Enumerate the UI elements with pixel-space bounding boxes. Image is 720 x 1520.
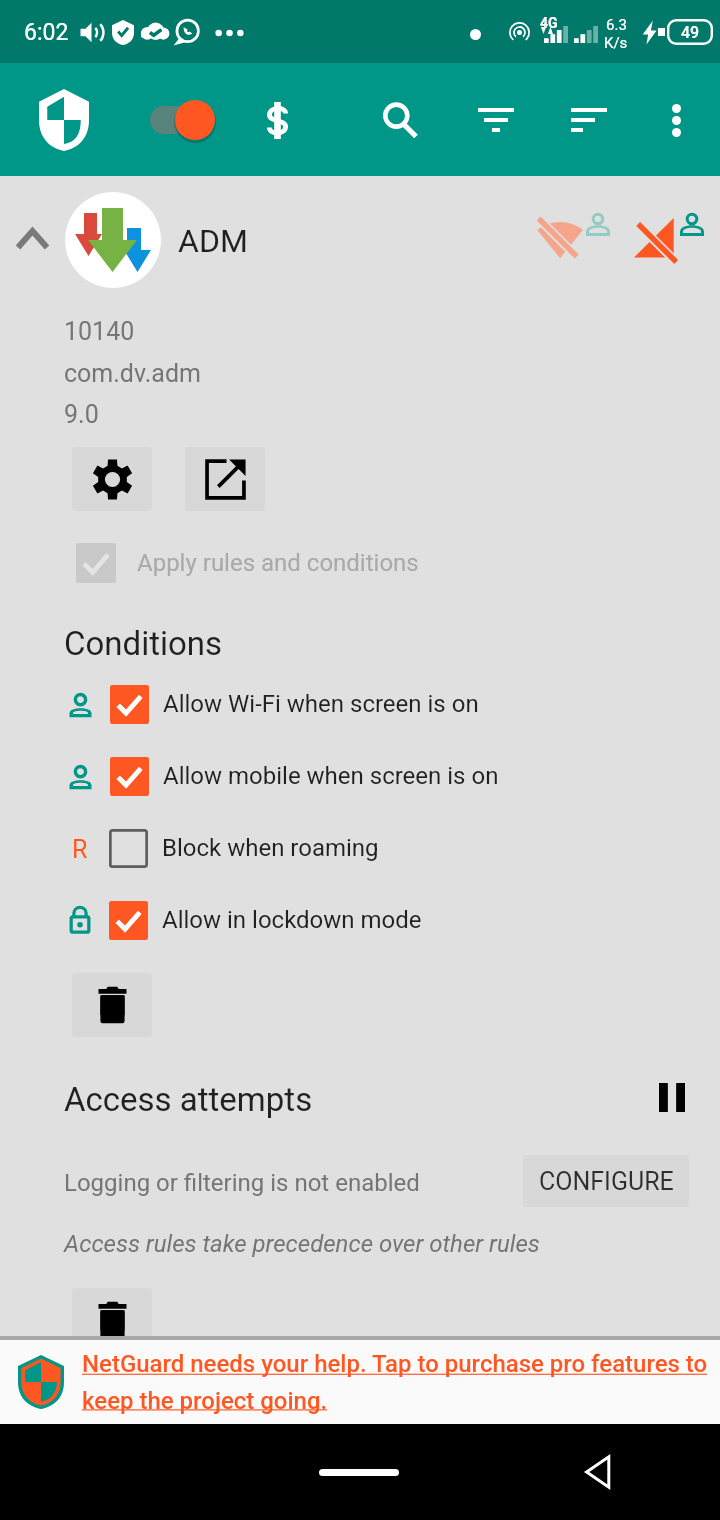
staticText: 49 bbox=[681, 23, 700, 42]
button[interactable]: Clear log bbox=[72, 1288, 152, 1352]
button[interactable]: NetGuard bbox=[32, 88, 96, 152]
button[interactable]: Mobile blocked bbox=[632, 207, 710, 265]
button[interactable]: Allow mobile when screen is on bbox=[0, 746, 720, 806]
staticText: ADM bbox=[178, 222, 248, 260]
button[interactable]: CONFIGURE bbox=[523, 1155, 689, 1207]
button[interactable]: NetGuard needs your help. Tap to purchas… bbox=[0, 1340, 720, 1424]
staticText: 4G bbox=[540, 15, 558, 31]
staticText: K/s bbox=[604, 34, 628, 52]
button[interactable]: Allow Wi-Fi when screen is on bbox=[0, 674, 720, 734]
button[interactable]: Purchase pro bbox=[250, 93, 304, 147]
staticText: Apply rules and conditions bbox=[137, 549, 419, 577]
button[interactable]: Collapse bbox=[4, 211, 60, 267]
button[interactable]: Apply rules and conditions bbox=[76, 543, 419, 583]
staticText: com.dv.adm bbox=[64, 359, 201, 388]
staticText: 9.0 bbox=[64, 400, 99, 429]
button[interactable]: Enable filtering bbox=[140, 92, 228, 148]
button[interactable]: Home bbox=[319, 1469, 399, 1476]
staticText: 10140 bbox=[64, 317, 135, 346]
staticText: CONFIGURE bbox=[539, 1167, 674, 1196]
staticText: NetGuard needs your help. Tap to purchas… bbox=[82, 1350, 720, 1414]
button[interactable]: Open app bbox=[185, 447, 265, 511]
button[interactable]: Settings bbox=[72, 447, 152, 511]
staticText: Allow Wi-Fi when screen is on bbox=[163, 690, 479, 718]
staticText: Access attempts bbox=[64, 1080, 313, 1119]
button[interactable]: R bbox=[0, 818, 720, 878]
button[interactable]: Allow in lockdown mode bbox=[0, 890, 720, 950]
button[interactable]: Sort bbox=[562, 93, 616, 147]
staticText: Allow mobile when screen is on bbox=[163, 762, 499, 790]
button[interactable]: Clear access rules bbox=[72, 973, 152, 1037]
staticText: Logging or filtering is not enabled bbox=[64, 1169, 420, 1197]
button[interactable]: Pause logging bbox=[650, 1075, 694, 1119]
staticText: R bbox=[72, 835, 88, 861]
staticText: 6.3 bbox=[606, 16, 627, 34]
staticText: Access rules take precedence over other … bbox=[64, 1230, 540, 1258]
button[interactable]: Wi-Fi blocked bbox=[538, 207, 616, 265]
staticText: Conditions bbox=[64, 624, 223, 663]
staticText: Block when roaming bbox=[162, 834, 379, 862]
button[interactable]: Filter bbox=[469, 93, 523, 147]
staticText: Allow in lockdown mode bbox=[162, 906, 422, 934]
staticText: 6:02 bbox=[24, 19, 69, 46]
button[interactable]: Back bbox=[574, 1448, 622, 1496]
button[interactable]: ADM icon bbox=[65, 192, 161, 288]
button[interactable]: More options bbox=[649, 93, 703, 147]
button[interactable]: Search bbox=[373, 93, 427, 147]
